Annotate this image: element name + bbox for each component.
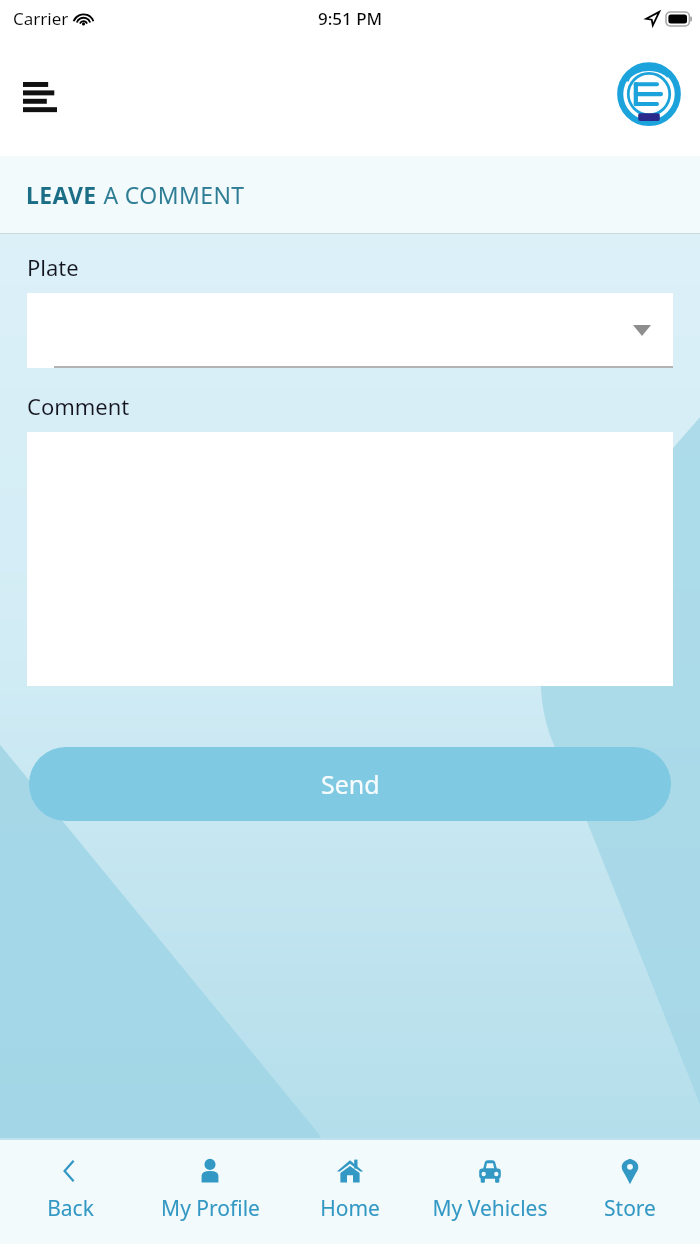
button[interactable]: HHA logo (610, 58, 688, 136)
button[interactable]: My Profile (140, 1140, 280, 1244)
staticText: LEAVE (26, 179, 97, 210)
staticText: 9:51 PM (318, 7, 383, 30)
staticText: Carrier (13, 7, 69, 30)
staticText: A COMMENT (97, 179, 245, 210)
button[interactable]: Home (280, 1140, 420, 1244)
staticText: My Profile (161, 1194, 260, 1223)
button[interactable]: Plate dropdown (27, 293, 673, 368)
button[interactable]: My Vehicles (420, 1140, 560, 1244)
staticText: Back (47, 1194, 94, 1223)
button[interactable]: Back (0, 1140, 140, 1244)
staticText: Plate (27, 252, 79, 282)
button[interactable]: Send (29, 747, 671, 821)
button[interactable]: Menu (14, 71, 66, 123)
staticText: Send (321, 767, 380, 801)
staticText: My Vehicles (432, 1194, 548, 1223)
staticText: Comment (27, 391, 130, 421)
button[interactable]: Store (560, 1140, 700, 1244)
staticText: Home (320, 1194, 380, 1223)
staticText: Store (604, 1194, 656, 1223)
